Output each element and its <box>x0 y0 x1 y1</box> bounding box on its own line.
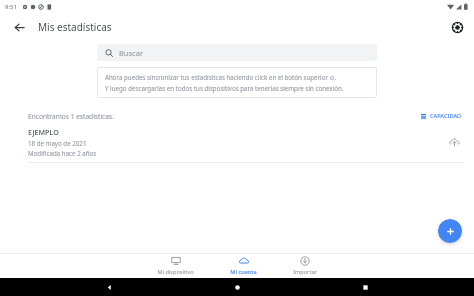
button[interactable]: Mi cuenta <box>225 255 262 277</box>
button[interactable]: Mi dispositivo <box>152 255 199 277</box>
staticText: Mi cuenta <box>230 268 257 276</box>
staticText: Ahora puedes sincronizar tus estadística… <box>105 73 337 81</box>
staticText: CAPACIDAD <box>430 112 462 120</box>
button[interactable]: Buscar <box>97 44 377 61</box>
staticText: 18 de mayo de 2021 <box>28 139 87 147</box>
staticText: Importar <box>293 268 317 276</box>
staticText: Y luego descargarlas en todos tus dispos… <box>105 84 344 92</box>
button[interactable]: Recent apps <box>356 278 374 296</box>
button[interactable]: Home <box>228 278 246 296</box>
button[interactable]: Back <box>8 16 30 38</box>
staticText: Encontramos 1 estadísticas. <box>28 112 114 121</box>
button[interactable]: Add <box>438 219 462 243</box>
staticText: Mis estadísticas <box>38 20 112 34</box>
staticText: Mi dispositivo <box>157 268 194 276</box>
staticText: Buscar <box>119 48 144 58</box>
staticText: Modificada hace 2 años <box>28 149 97 157</box>
button[interactable]: Importar <box>288 255 322 277</box>
button[interactable]: EJEMPLO <box>0 124 474 162</box>
button[interactable]: CAPACIDAD <box>418 111 464 121</box>
button[interactable]: Settings <box>447 17 467 37</box>
staticText: 9:51 <box>5 3 17 11</box>
button[interactable]: Back <box>100 278 118 296</box>
button[interactable]: Upload to cloud <box>444 132 464 152</box>
staticText: EJEMPLO <box>28 127 59 137</box>
